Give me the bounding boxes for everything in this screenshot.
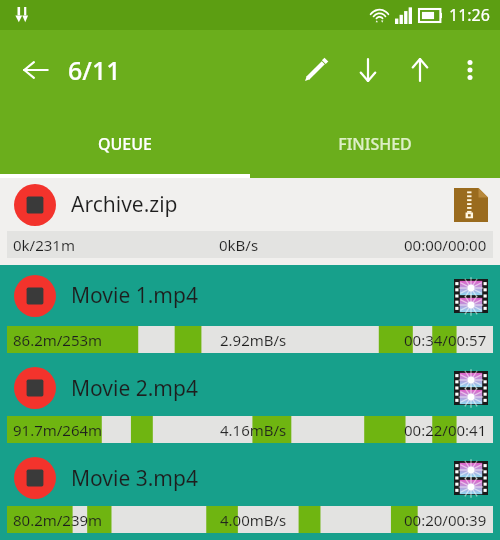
staticText: QUEUE [98, 133, 152, 155]
staticText: 00:34/00:57 [404, 330, 487, 350]
button[interactable]: Stop download [13, 183, 57, 227]
button[interactable]: Stop download [0, 178, 500, 265]
staticText: FINISHED [338, 133, 412, 155]
button[interactable]: QUEUE [0, 110, 250, 178]
button[interactable]: Stop download [0, 360, 500, 450]
staticText: 11:26 [449, 4, 490, 26]
staticText: 91.7m/264m [13, 420, 103, 440]
staticText: Archive.zip [71, 190, 454, 219]
staticText: 80.2m/239m [13, 510, 103, 530]
staticText: 0k/231m [13, 235, 75, 255]
staticText: 0kB/s [219, 235, 259, 255]
button[interactable]: Edit [290, 44, 342, 96]
staticText: Movie 2.mp4 [71, 374, 454, 403]
button[interactable]: Stop download [0, 450, 500, 540]
button[interactable]: More options [446, 46, 494, 94]
staticText: 00:22/00:41 [404, 420, 487, 440]
staticText: 86.2m/253m [13, 330, 103, 350]
staticText: 00:20/00:39 [404, 510, 487, 530]
button[interactable]: Stop download [13, 456, 57, 500]
button[interactable]: Stop download [13, 274, 57, 318]
staticText: 4.00mB/s [220, 510, 287, 530]
button[interactable]: Move up [394, 44, 446, 96]
staticText: 2.92mB/s [220, 330, 287, 350]
staticText: 4.16mB/s [220, 420, 287, 440]
staticText: Movie 3.mp4 [71, 464, 454, 493]
button[interactable]: Back [10, 44, 62, 96]
staticText: 00:00/00:00 [404, 235, 487, 255]
button[interactable]: FINISHED [250, 110, 500, 178]
button[interactable]: Move down [342, 44, 394, 96]
button[interactable]: Stop download [0, 265, 500, 360]
staticText: 6/11 [68, 53, 121, 87]
staticText: Movie 1.mp4 [71, 281, 454, 310]
button[interactable]: Stop download [13, 366, 57, 410]
